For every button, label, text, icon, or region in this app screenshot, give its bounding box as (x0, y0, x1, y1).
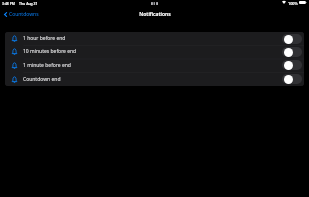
staticText: 3:48 PM (2, 1, 15, 6)
button[interactable]: Toggle notification (282, 34, 302, 44)
button[interactable]: Toggle notification (282, 60, 302, 70)
staticText: Notifications (139, 11, 171, 18)
button[interactable]: 1 minute before end (5, 58, 304, 72)
button[interactable]: 10 minutes before end (5, 45, 304, 58)
staticText: Thu Aug 31 (19, 1, 38, 6)
staticText: 1 minute before end (23, 62, 71, 69)
staticText: Countdown end (23, 76, 61, 83)
staticText: 100% (288, 1, 298, 6)
staticText: 10 minutes before end (23, 48, 77, 55)
button[interactable]: Countdown end (5, 72, 304, 86)
button[interactable]: Toggle notification (282, 47, 302, 57)
other: More (151, 2, 158, 5)
button[interactable]: 1 hour before end (5, 32, 304, 45)
button[interactable]: Toggle notification (282, 74, 302, 84)
button[interactable]: Countdowns (1, 9, 43, 20)
staticText: 1 hour before end (23, 35, 66, 42)
staticText: Countdowns (9, 11, 39, 18)
